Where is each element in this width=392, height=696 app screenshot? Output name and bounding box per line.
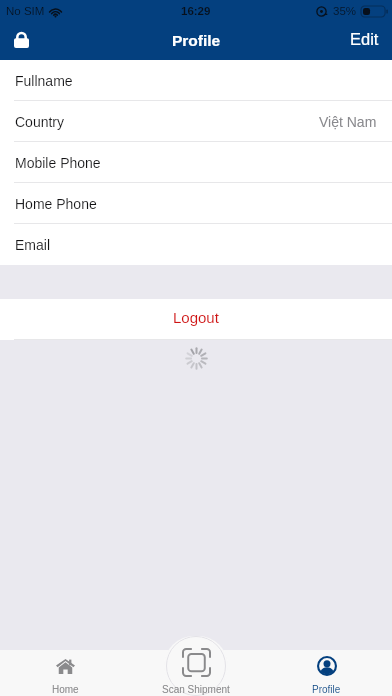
staticText: Edit <box>350 30 379 48</box>
button[interactable]: Account locked <box>5 23 37 55</box>
staticText: Việt Nam <box>319 114 377 130</box>
staticText: Country <box>15 114 65 130</box>
button[interactable]: Scan Shipment <box>164 636 228 696</box>
staticText: Fullname <box>15 73 73 89</box>
staticText: Profile <box>312 684 341 695</box>
staticText: 16:29 <box>181 5 211 18</box>
button[interactable]: Home Phone <box>0 183 392 224</box>
staticText: Home <box>52 684 79 695</box>
staticText: Home Phone <box>15 196 97 212</box>
staticText: Mobile Phone <box>15 155 101 171</box>
button[interactable]: Fullname <box>0 60 392 101</box>
button[interactable]: Email <box>0 224 392 265</box>
button[interactable]: Profile <box>261 650 392 696</box>
staticText: Logout <box>173 309 219 326</box>
staticText: 35% <box>333 5 357 18</box>
staticText: Scan Shipment <box>162 684 230 695</box>
button[interactable]: Edit <box>345 25 384 53</box>
button[interactable]: Logout <box>0 299 392 340</box>
button[interactable]: Home <box>0 650 130 696</box>
button[interactable]: Country <box>0 101 392 142</box>
button[interactable]: Mobile Phone <box>0 142 392 183</box>
staticText: Profile <box>172 32 221 49</box>
staticText: Email <box>15 237 51 253</box>
staticText: No SIM <box>6 5 45 18</box>
